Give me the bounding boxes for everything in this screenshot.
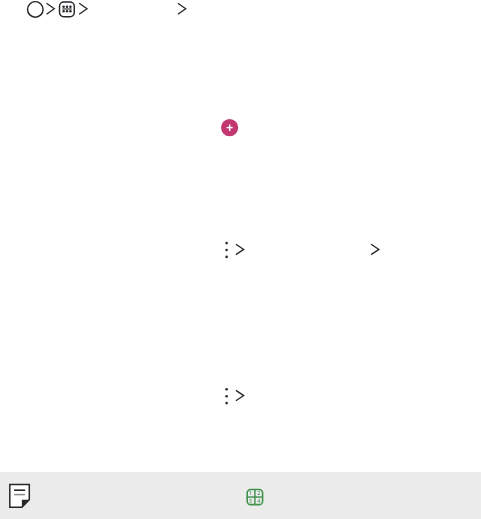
button[interactable]: Keypad [242, 484, 268, 510]
button[interactable]: More options [220, 240, 234, 262]
button[interactable]: All apps [58, 0, 76, 20]
button[interactable]: Forward [369, 242, 381, 258]
button[interactable]: Forward [234, 242, 246, 258]
button[interactable]: Forward [234, 388, 246, 404]
button[interactable]: Forward [77, 0, 89, 20]
button[interactable]: Forward [45, 0, 57, 20]
button[interactable]: Home [26, 0, 46, 20]
button[interactable]: More options [220, 386, 234, 408]
button[interactable]: Forward [176, 0, 188, 20]
button[interactable]: Add [219, 117, 241, 139]
button[interactable]: Notes [5, 481, 34, 511]
